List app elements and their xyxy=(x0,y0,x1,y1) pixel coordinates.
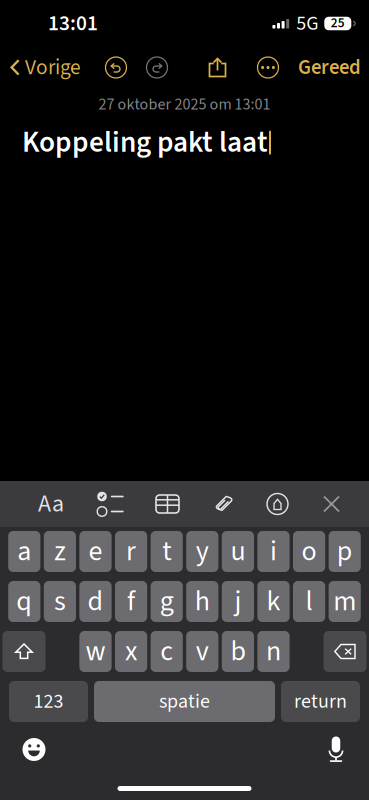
button[interactable]: Redo xyxy=(145,55,169,79)
staticText: p xyxy=(337,532,353,571)
staticText: 5G xyxy=(296,9,318,38)
button[interactable]: a xyxy=(8,531,40,572)
button[interactable]: return xyxy=(281,681,360,722)
staticText: k xyxy=(266,582,280,621)
button[interactable]: u xyxy=(222,531,254,572)
button[interactable]: Vorige xyxy=(10,47,81,88)
button[interactable]: Attach xyxy=(214,494,234,513)
staticText: i xyxy=(270,532,277,571)
button[interactable]: Emoji xyxy=(21,736,47,762)
button[interactable]: Delete xyxy=(323,631,366,672)
button[interactable]: b xyxy=(222,631,254,672)
staticText: j xyxy=(234,582,241,621)
button[interactable]: e xyxy=(79,531,112,572)
button[interactable]: s xyxy=(44,581,76,622)
button[interactable]: Share xyxy=(208,56,227,78)
staticText: 27 oktober 2025 om 13:01 xyxy=(98,93,270,116)
button[interactable]: q xyxy=(8,581,40,622)
staticText: r xyxy=(126,532,136,571)
button[interactable]: g xyxy=(151,581,183,622)
button[interactable]: Table xyxy=(155,493,180,515)
button[interactable]: i xyxy=(257,531,290,572)
button[interactable]: h xyxy=(186,581,218,622)
staticText: s xyxy=(54,582,66,621)
button[interactable]: v xyxy=(186,631,218,672)
button[interactable]: m xyxy=(329,581,361,622)
staticText: u xyxy=(230,532,245,571)
staticText: l xyxy=(306,582,313,621)
staticText: b xyxy=(230,632,245,671)
button[interactable]: x xyxy=(115,631,147,672)
button[interactable]: w xyxy=(79,631,112,672)
staticText: t xyxy=(162,532,171,571)
staticText: 123 xyxy=(33,687,63,716)
button[interactable]: d xyxy=(79,581,112,622)
staticText: Vorige xyxy=(25,52,81,83)
staticText: x xyxy=(125,632,137,671)
button[interactable]: k xyxy=(257,581,290,622)
staticText: m xyxy=(333,582,356,621)
staticText: h xyxy=(195,582,210,621)
button[interactable]: Format xyxy=(36,491,66,517)
button[interactable]: Close xyxy=(323,495,340,512)
staticText: a xyxy=(17,532,31,571)
button[interactable]: n xyxy=(257,631,290,672)
staticText: e xyxy=(88,532,102,571)
staticText: o xyxy=(302,532,317,571)
staticText: n xyxy=(266,632,281,671)
button[interactable]: j xyxy=(222,581,254,622)
button[interactable]: Checklist xyxy=(97,491,124,517)
staticText: y xyxy=(196,532,209,571)
staticText: w xyxy=(85,632,105,671)
button[interactable]: z xyxy=(44,531,76,572)
staticText: Aa xyxy=(38,487,64,521)
staticText: v xyxy=(196,632,209,671)
staticText: z xyxy=(54,532,66,571)
staticText: q xyxy=(16,582,32,621)
staticText: return xyxy=(294,687,347,716)
staticText: c xyxy=(160,632,173,671)
button[interactable]: o xyxy=(293,531,325,572)
staticText: f xyxy=(127,582,135,621)
button[interactable]: Dictate xyxy=(325,735,347,763)
button[interactable]: p xyxy=(329,531,361,572)
button[interactable]: Undo xyxy=(104,55,128,79)
button[interactable]: Markup xyxy=(266,492,289,515)
button[interactable]: f xyxy=(115,581,147,622)
staticText: Koppeling pakt laat xyxy=(22,122,268,164)
staticText: d xyxy=(87,582,103,621)
staticText: Gereed xyxy=(298,53,361,82)
button[interactable]: 123 xyxy=(9,681,88,722)
button[interactable]: c xyxy=(151,631,183,672)
button[interactable]: Shift xyxy=(2,631,45,672)
button[interactable]: spatie xyxy=(94,681,275,722)
staticText: 25 xyxy=(331,14,345,33)
staticText: g xyxy=(160,582,174,621)
staticText: spatie xyxy=(159,687,210,716)
button[interactable]: Gereed xyxy=(298,47,361,88)
button[interactable]: y xyxy=(186,531,218,572)
button[interactable]: More xyxy=(256,55,280,79)
button[interactable]: r xyxy=(115,531,147,572)
button[interactable]: l xyxy=(293,581,325,622)
staticText: 13:01 xyxy=(48,8,98,39)
button[interactable]: t xyxy=(151,531,183,572)
